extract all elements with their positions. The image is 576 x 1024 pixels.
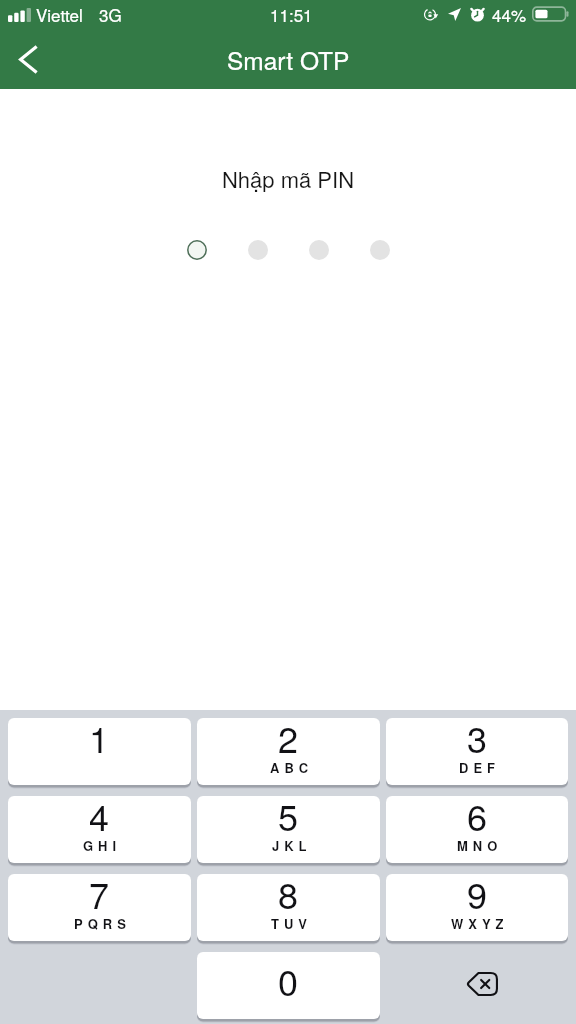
staticText: 44%	[492, 2, 527, 26]
staticText: JKL	[272, 836, 312, 855]
staticText: MNO	[457, 836, 503, 855]
staticText: 9	[467, 874, 488, 920]
button[interactable]: 6	[386, 796, 568, 863]
staticText: 7	[89, 874, 110, 920]
button[interactable]: Delete	[386, 952, 568, 1019]
button[interactable]: 2	[197, 718, 380, 785]
button[interactable]: 8	[197, 874, 380, 941]
staticText: Viettel	[36, 2, 83, 26]
staticText: 2	[278, 718, 299, 764]
button[interactable]: 7	[8, 874, 191, 941]
button[interactable]: 1	[8, 718, 191, 785]
button[interactable]: 0	[197, 952, 380, 1019]
button[interactable]: 9	[386, 874, 568, 941]
staticText: GHI	[83, 836, 122, 855]
staticText: Nhập mã PIN	[0, 163, 576, 195]
staticText: 3G	[99, 2, 122, 26]
button[interactable]: Back	[0, 31, 56, 87]
button[interactable]: 4	[8, 796, 191, 863]
staticText: 4	[89, 796, 110, 842]
button[interactable]: 5	[197, 796, 380, 863]
button[interactable]: 3	[386, 718, 568, 785]
staticText: WXYZ	[451, 914, 509, 933]
staticText: 6	[467, 796, 488, 842]
staticText: 0	[278, 955, 299, 1007]
staticText: TUV	[271, 914, 313, 933]
staticText: Smart OTP	[227, 42, 350, 77]
staticText: 1	[89, 718, 110, 764]
staticText: 8	[278, 874, 299, 920]
staticText: DEF	[459, 758, 501, 777]
staticText: PQRS	[74, 914, 131, 933]
staticText: 11:51	[270, 2, 313, 26]
staticText: 5	[278, 796, 299, 842]
staticText: 3	[467, 718, 488, 764]
staticText: ABC	[270, 758, 314, 777]
